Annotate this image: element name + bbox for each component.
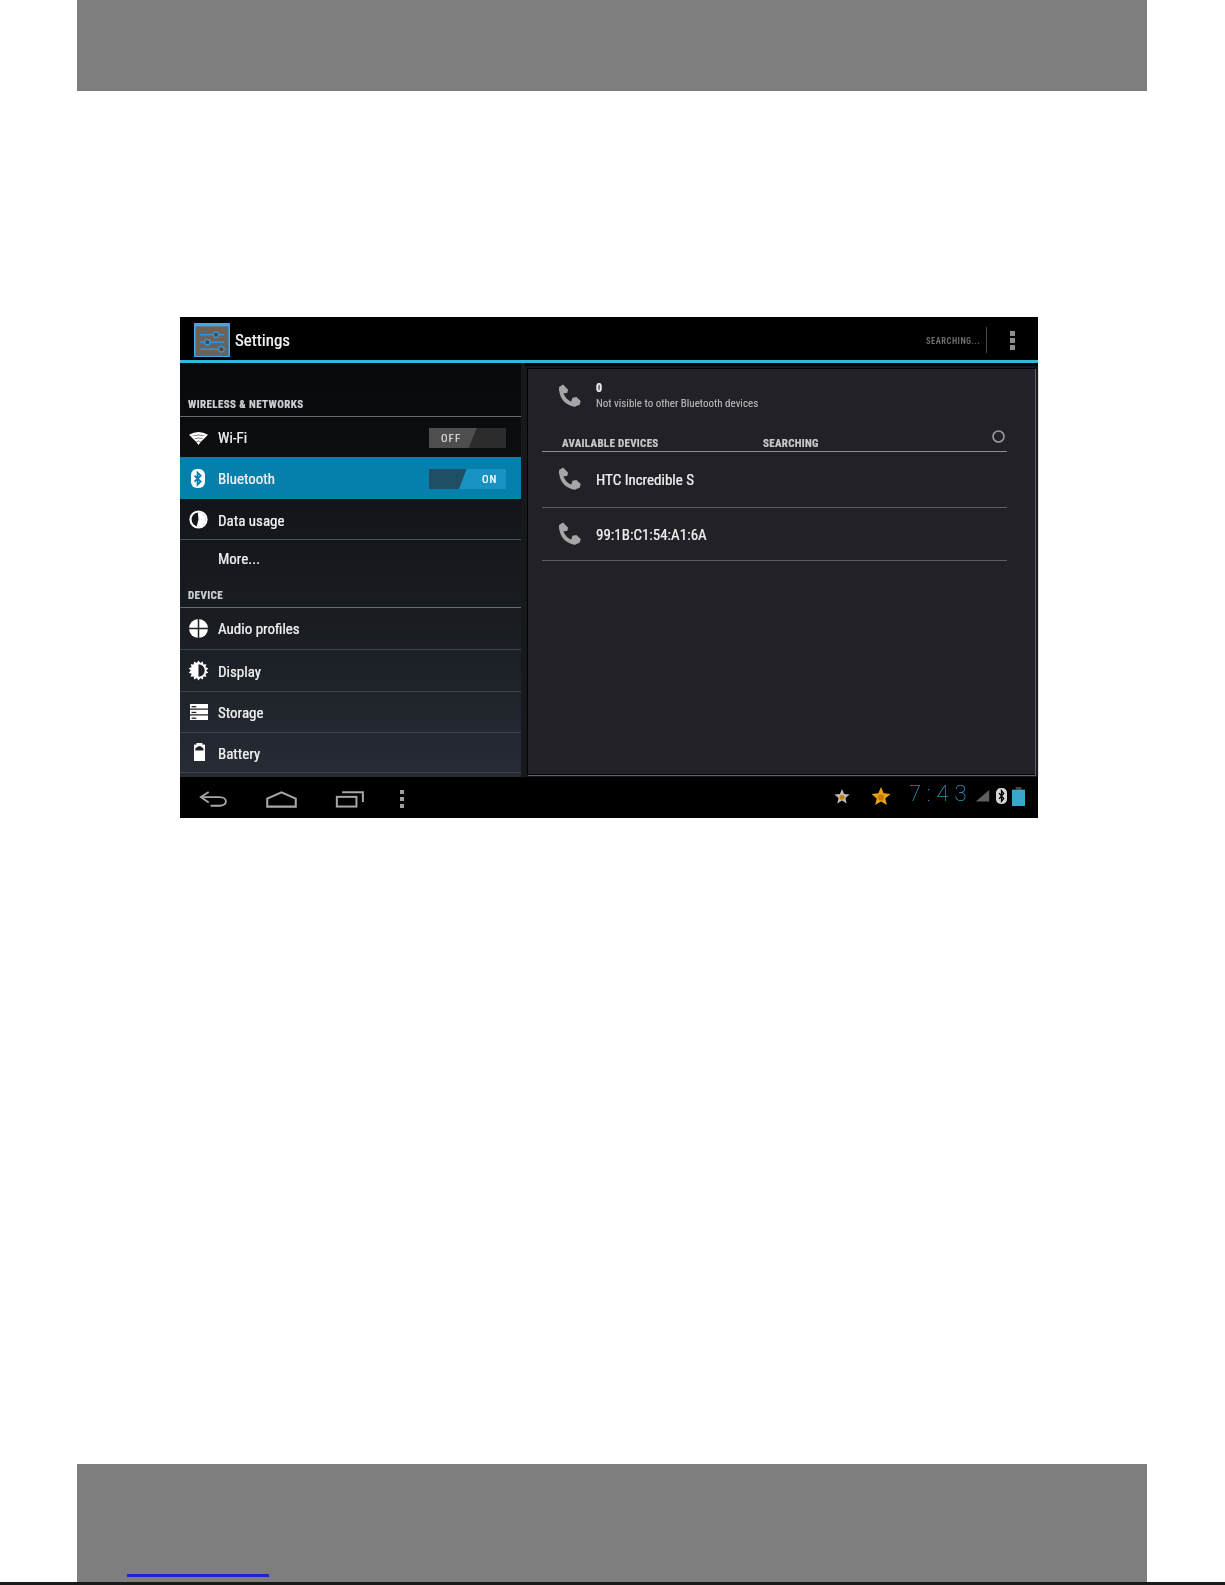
- button[interactable]: 99:1B:C1:54:A1:6A: [528, 508, 1035, 561]
- button[interactable]: Recent apps: [324, 779, 376, 818]
- staticText: More...: [218, 550, 261, 568]
- button[interactable]: Data usage: [180, 499, 521, 540]
- staticText: WIRELESS & NETWORKS: [188, 398, 304, 411]
- button[interactable]: Wi-Fi: [180, 416, 521, 457]
- button[interactable]: Menu: [383, 779, 421, 818]
- staticText: 99:1B:C1:54:A1:6A: [596, 526, 707, 544]
- staticText: ON: [482, 473, 498, 486]
- button[interactable]: Bluetooth: [180, 457, 521, 499]
- staticText: SEARCHING: [763, 437, 819, 450]
- button[interactable]: HTC Incredible S: [528, 452, 1035, 508]
- staticText: Display: [218, 663, 262, 681]
- button[interactable]: Battery: [180, 733, 521, 772]
- button[interactable]: Back: [188, 779, 240, 818]
- staticText: Battery: [218, 745, 261, 763]
- staticText: Storage: [218, 704, 264, 722]
- staticText: Wi-Fi: [218, 429, 248, 447]
- button[interactable]: Storage: [180, 692, 521, 732]
- staticText: SEARCHING...: [926, 336, 981, 346]
- button[interactable]: Display: [180, 650, 521, 691]
- staticText: OFF: [441, 432, 462, 445]
- button[interactable]: More...: [180, 540, 521, 576]
- staticText: 7:43: [909, 781, 973, 807]
- staticText: Bluetooth: [218, 470, 275, 488]
- button[interactable]: More options: [993, 317, 1031, 363]
- button[interactable]: Audio profiles: [180, 607, 521, 649]
- staticText: HTC Incredible S: [596, 471, 695, 489]
- button[interactable]: Home: [255, 780, 307, 819]
- button[interactable]: 0: [528, 369, 1035, 421]
- staticText: Data usage: [218, 512, 285, 530]
- staticText: Not visible to other Bluetooth devices: [596, 397, 759, 410]
- staticText: DEVICE: [188, 589, 224, 602]
- staticText: Audio profiles: [218, 620, 300, 638]
- staticText: AVAILABLE DEVICES: [562, 437, 659, 450]
- staticText: 0: [596, 381, 603, 395]
- staticText: Settings: [235, 330, 291, 350]
